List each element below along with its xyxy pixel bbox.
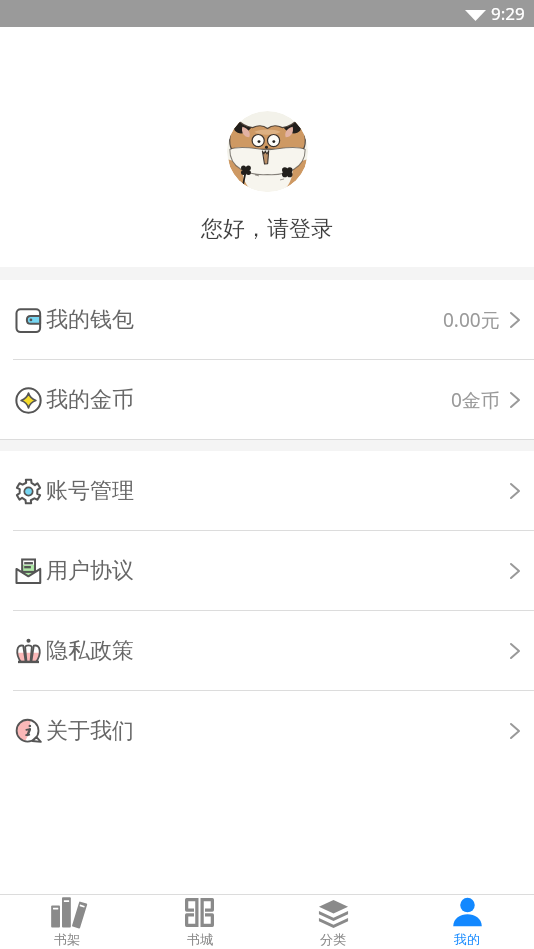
button[interactable]: 账号管理 bbox=[0, 451, 534, 531]
button[interactable]: 书架 bbox=[0, 895, 133, 949]
button[interactable]: 隐私政策 bbox=[0, 611, 534, 691]
staticText: 分类 bbox=[320, 931, 346, 947]
staticText: 我的金币 bbox=[46, 386, 134, 414]
button[interactable]: 分类 bbox=[266, 895, 400, 949]
button[interactable]: 关于我们 bbox=[0, 691, 534, 771]
staticText: 0金币 bbox=[451, 387, 500, 413]
button[interactable]: 用户协议 bbox=[0, 531, 534, 611]
button[interactable]: 我的钱包 bbox=[0, 280, 534, 360]
staticText: 书架 bbox=[54, 931, 80, 947]
staticText: 书城 bbox=[187, 931, 213, 947]
button[interactable]: 您好，请登录 bbox=[201, 215, 333, 243]
staticText: 0.00元 bbox=[443, 307, 500, 333]
staticText: 用户协议 bbox=[46, 557, 134, 585]
staticText: 账号管理 bbox=[46, 477, 134, 505]
staticText: 我的 bbox=[454, 931, 480, 947]
staticText: 隐私政策 bbox=[46, 637, 134, 665]
button[interactable]: 书城 bbox=[133, 895, 266, 949]
staticText: 关于我们 bbox=[46, 717, 134, 745]
staticText: 9:29 bbox=[491, 2, 525, 25]
button[interactable]: 我的 bbox=[400, 895, 534, 949]
button[interactable]: 我的金币 bbox=[0, 360, 534, 440]
button[interactable] bbox=[227, 111, 308, 192]
staticText: 我的钱包 bbox=[46, 306, 134, 334]
